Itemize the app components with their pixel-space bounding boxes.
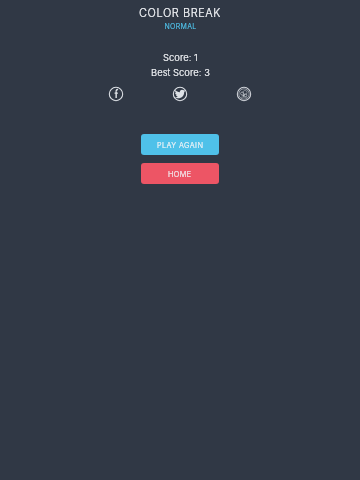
staticText: PLAY AGAIN <box>157 141 204 150</box>
button[interactable]: Leaderboards <box>234 84 254 104</box>
button[interactable]: Share on Twitter <box>170 84 190 104</box>
staticText: Score: 1 <box>163 52 198 63</box>
staticText: Best Score: 3 <box>151 67 210 78</box>
staticText: COLOR BREAK <box>139 6 221 19</box>
staticText: NORMAL <box>164 22 197 30</box>
button[interactable]: Share on Facebook <box>106 84 126 104</box>
staticText: HOME <box>168 170 192 179</box>
button[interactable]: PLAY AGAIN <box>141 134 219 155</box>
button[interactable]: HOME <box>141 163 219 184</box>
